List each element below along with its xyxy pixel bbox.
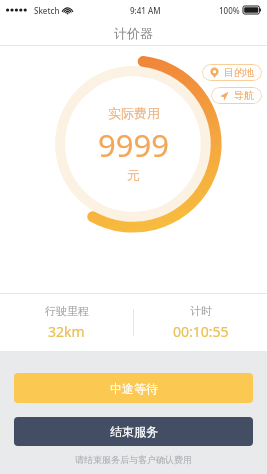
staticText: 9999 [98,124,169,166]
staticText: 计时 [190,304,212,318]
staticText: 目的地 [224,66,254,79]
staticText: 结束服务 [110,424,158,439]
staticText: 32km [48,322,85,341]
button[interactable]: 中途等待 [14,373,253,403]
staticText: 计价器 [114,25,153,41]
button[interactable]: Navigation [211,87,262,104]
other: Destination [210,67,219,78]
staticText: 9:41 AM [130,5,161,16]
staticText: 中途等待 [110,381,158,396]
staticText: 100% [219,5,240,16]
button[interactable]: Destination [202,64,262,81]
staticText: 导航 [234,89,254,102]
staticText: Sketch [34,5,60,16]
staticText: 元 [127,167,140,183]
staticText: 请结束服务后与客户确认费用 [75,454,192,465]
other: Navigation [219,91,229,101]
staticText: 00:10:55 [173,322,229,341]
button[interactable]: 结束服务 [14,417,253,446]
staticText: 实际费用 [108,105,160,121]
staticText: 行驶里程 [45,304,89,318]
